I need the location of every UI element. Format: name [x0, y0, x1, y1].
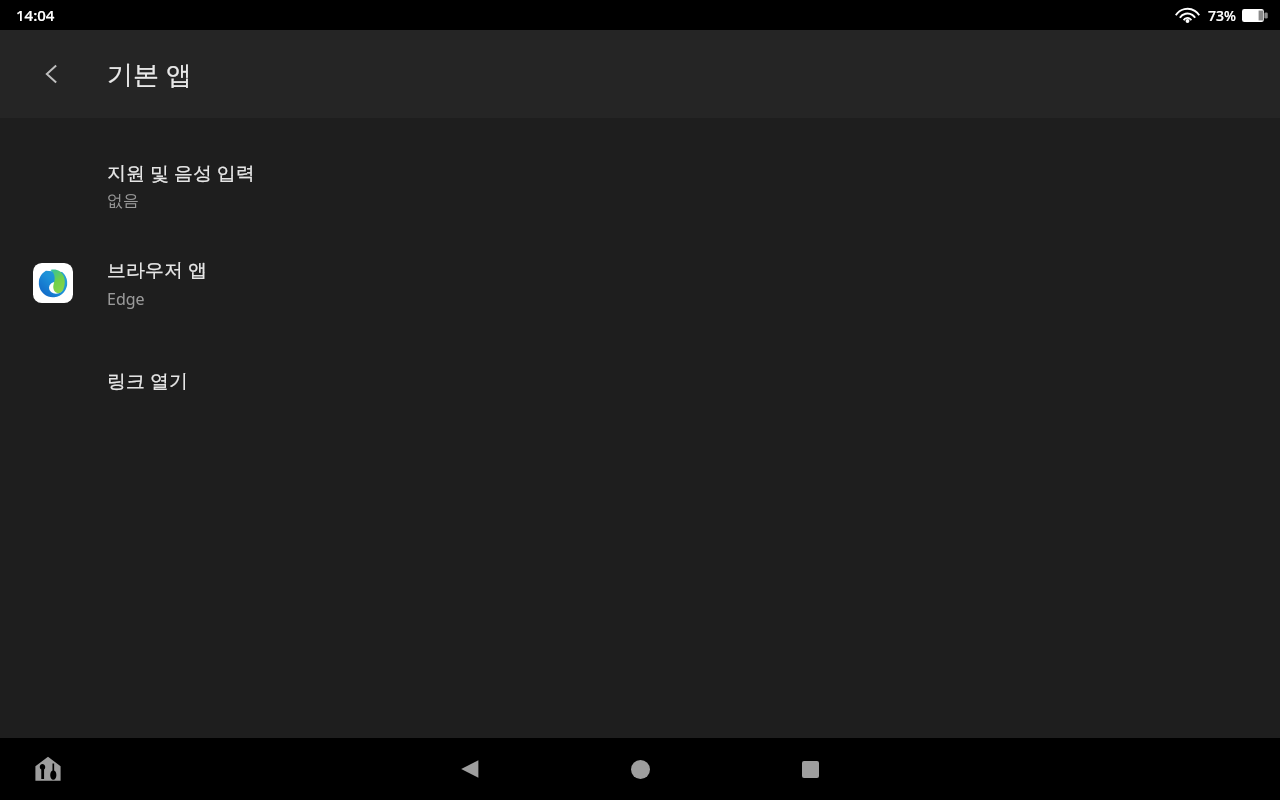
staticText: 링크 열기 — [107, 368, 188, 394]
button[interactable]: Home — [616, 745, 664, 793]
staticText: 지원 및 음성 입력 — [107, 160, 255, 186]
staticText: 없음 — [107, 191, 139, 211]
staticText: 브라우저 앱 — [107, 257, 207, 283]
staticText: 73% — [1208, 6, 1236, 25]
button[interactable]: Back — [29, 51, 75, 97]
staticText: Edge — [107, 288, 145, 310]
button[interactable]: 링크 열기 — [0, 332, 1280, 430]
button[interactable]: Recent apps — [786, 745, 834, 793]
button[interactable]: 지원 및 음성 입력 — [0, 136, 1280, 234]
button[interactable]: Home assistant — [26, 747, 70, 791]
staticText: 14:04 — [16, 5, 55, 25]
button[interactable]: 브라우저 앱 — [0, 234, 1280, 332]
button[interactable]: Back — [446, 745, 494, 793]
staticText: 기본 앱 — [107, 56, 192, 92]
